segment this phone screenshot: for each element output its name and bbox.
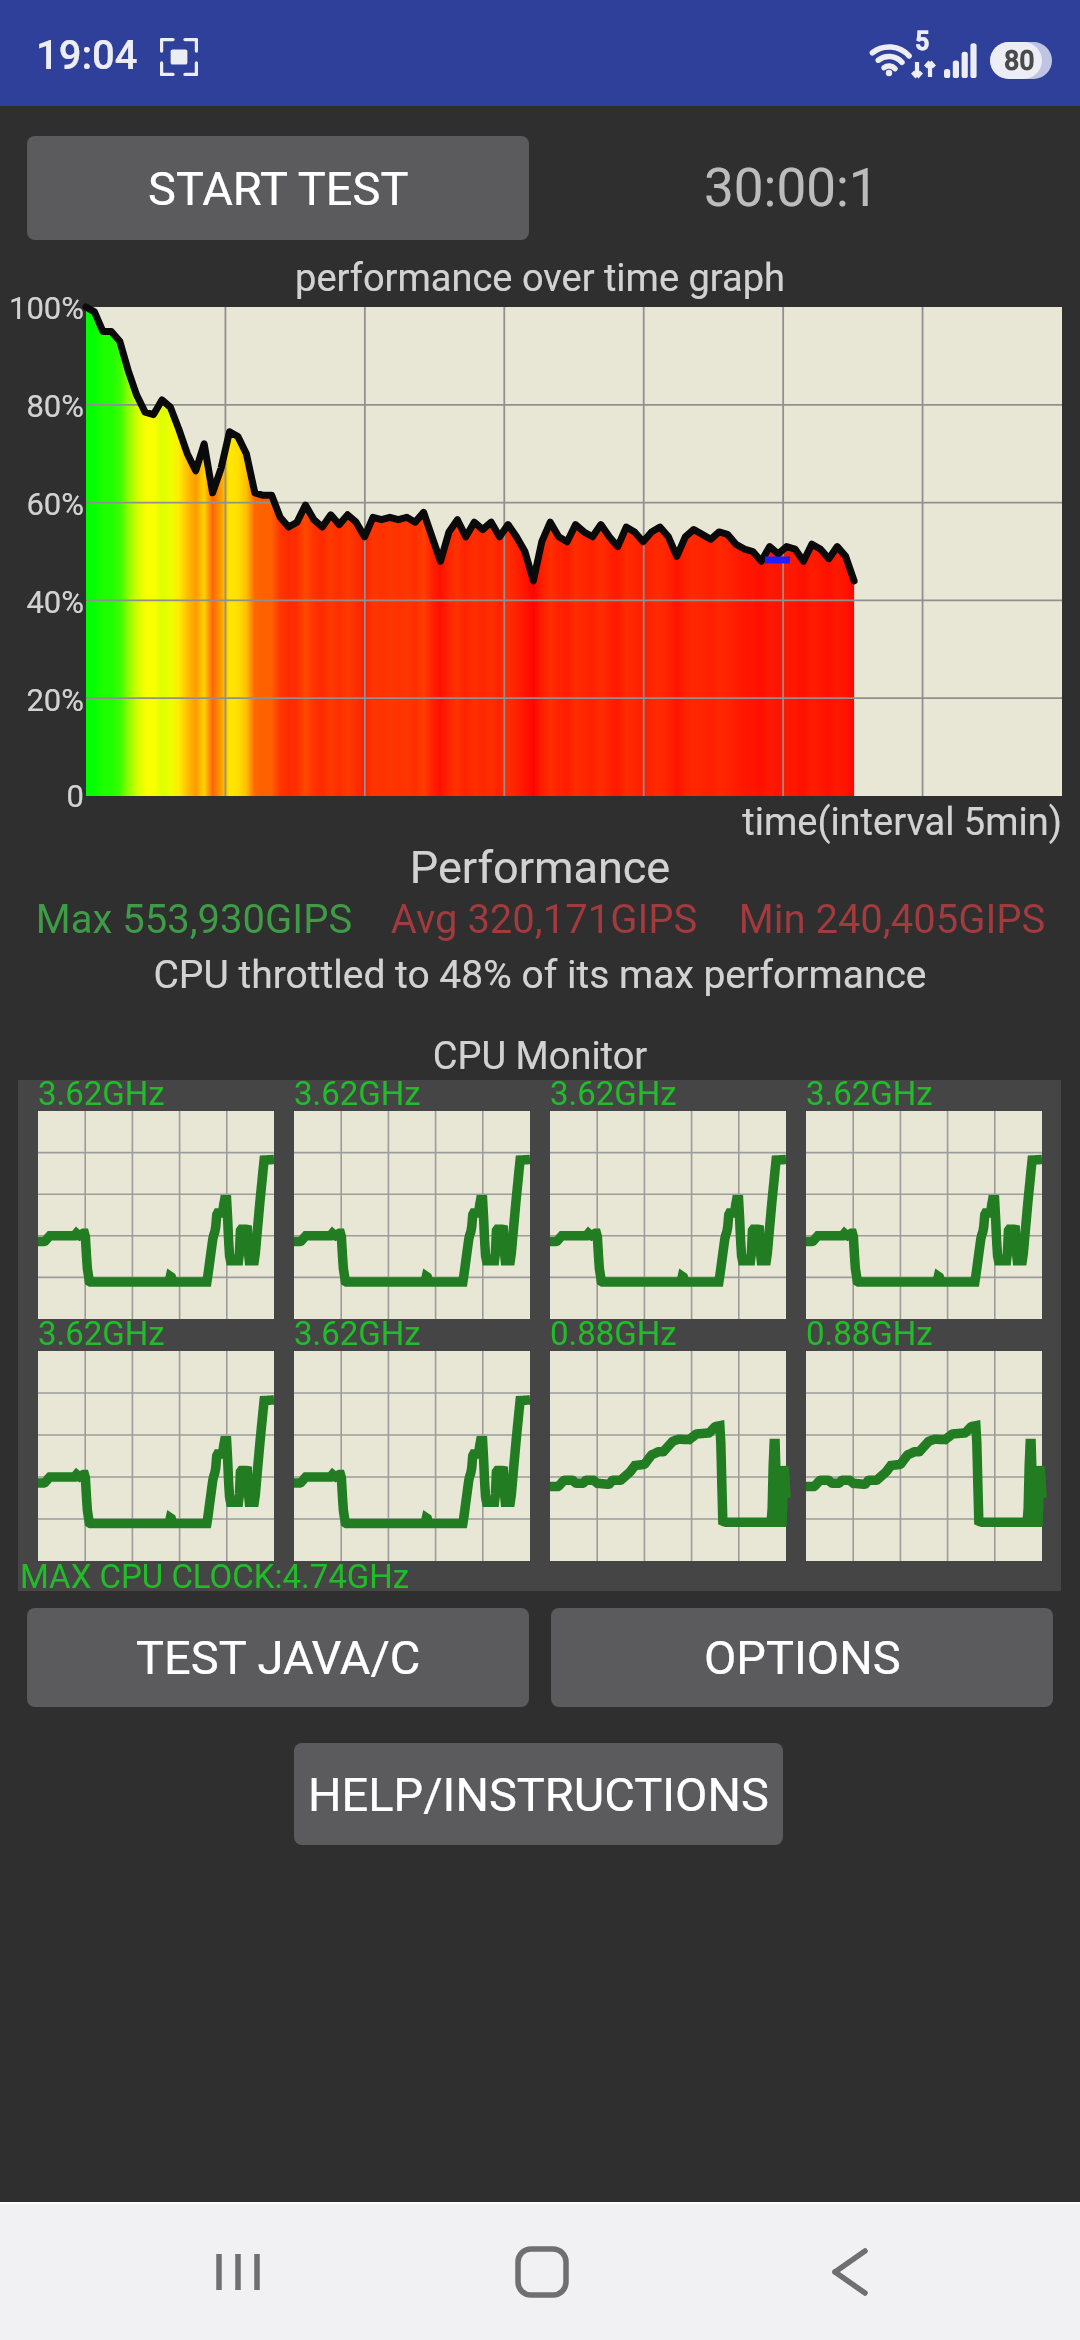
button[interactable]: START TEST xyxy=(27,136,529,240)
button[interactable]: OPTIONS xyxy=(551,1608,1053,1707)
staticText: 80% xyxy=(0,388,84,424)
button[interactable]: Back xyxy=(760,2204,940,2340)
staticText: CPU throttled to 48% of its max performa… xyxy=(0,952,1080,998)
button[interactable]: Home xyxy=(452,2204,632,2340)
staticText: 20% xyxy=(0,682,84,718)
staticText: HELP/INSTRUCTIONS xyxy=(308,1767,769,1822)
staticText: 3.62GHz xyxy=(38,1314,165,1353)
staticText: 80 xyxy=(1004,45,1035,77)
staticText: 0 xyxy=(0,778,84,814)
staticText: 60% xyxy=(0,486,84,522)
staticText: Performance xyxy=(0,841,1080,894)
staticText: 3.62GHz xyxy=(294,1074,421,1113)
staticText: 0.88GHz xyxy=(806,1314,933,1353)
staticText: 30:00:1 xyxy=(704,157,879,219)
staticText: time(interval 5min) xyxy=(0,800,1062,845)
staticText: OPTIONS xyxy=(704,1630,901,1685)
staticText: Avg 320,171GIPS xyxy=(354,896,734,943)
staticText: TEST JAVA/C xyxy=(136,1630,421,1685)
staticText: 3.62GHz xyxy=(294,1314,421,1353)
staticText: MAX CPU CLOCK:4.74GHz xyxy=(20,1557,410,1596)
staticText: START TEST xyxy=(148,161,409,216)
staticText: Max 553,930GIPS xyxy=(4,896,384,943)
staticText: CPU Monitor xyxy=(0,1034,1080,1079)
staticText: 3.62GHz xyxy=(38,1074,165,1113)
staticText: 3.62GHz xyxy=(550,1074,677,1113)
staticText: 19:04 xyxy=(36,32,138,79)
staticText: 100% xyxy=(0,290,84,326)
staticText: 0.88GHz xyxy=(550,1314,677,1353)
staticText: Min 240,405GIPS xyxy=(702,896,1080,943)
staticText: performance over time graph xyxy=(0,256,1080,301)
button[interactable]: TEST JAVA/C xyxy=(27,1608,529,1707)
button[interactable]: Recents xyxy=(150,2204,330,2340)
staticText: 3.62GHz xyxy=(806,1074,933,1113)
staticText: 40% xyxy=(0,584,84,620)
button[interactable]: HELP/INSTRUCTIONS xyxy=(294,1743,783,1845)
staticText: 5 xyxy=(915,27,930,56)
